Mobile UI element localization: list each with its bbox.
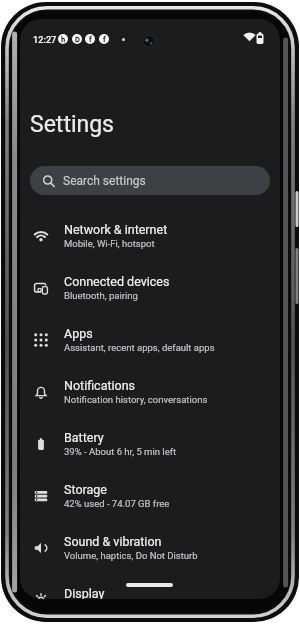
staticText: Mobile, Wi-Fi, hotspot xyxy=(64,238,155,249)
staticText: Notification history, conversations xyxy=(64,394,208,405)
staticText: Connected devices xyxy=(64,274,170,289)
button[interactable]: Search settings xyxy=(30,166,270,195)
staticText: h xyxy=(61,35,66,44)
staticText: Assistant, recent apps, default apps xyxy=(64,342,215,353)
staticText: Volume, haptics, Do Not Disturb xyxy=(64,550,198,561)
staticText: f xyxy=(103,35,106,44)
button[interactable]: Display xyxy=(20,580,280,599)
staticText: Sound & vibration xyxy=(64,534,162,549)
button[interactable]: Storage xyxy=(20,476,280,528)
staticText: Storage xyxy=(64,482,107,497)
staticText: Network & internet xyxy=(64,222,168,237)
staticText: 12:27 xyxy=(33,34,57,45)
staticText: Apps xyxy=(64,326,93,341)
button[interactable]: Sound & vibration xyxy=(20,528,280,580)
button[interactable]: Connected devices xyxy=(20,268,280,320)
staticText: 42% used - 74.07 GB free xyxy=(64,498,170,509)
button[interactable]: Apps xyxy=(20,320,280,372)
staticText: Bluetooth, pairing xyxy=(64,290,138,301)
button[interactable]: Notifications xyxy=(20,372,280,424)
staticText: 39% - About 6 hr, 5 min left xyxy=(64,446,177,457)
staticText: Search settings xyxy=(63,174,146,188)
staticText: D xyxy=(75,35,80,44)
staticText: Battery xyxy=(64,430,104,445)
staticText: Display xyxy=(64,586,105,599)
staticText: Settings xyxy=(30,111,114,138)
staticText: f xyxy=(89,35,92,44)
button[interactable]: Network & internet xyxy=(20,216,280,268)
button[interactable]: Battery xyxy=(20,424,280,476)
staticText: Notifications xyxy=(64,378,136,393)
